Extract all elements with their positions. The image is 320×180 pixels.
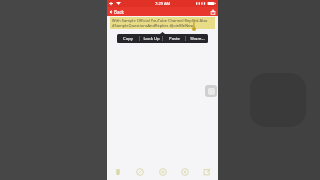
button[interactable]: Share... [186,34,208,43]
button[interactable]: Share [210,9,216,15]
staticText: Back [114,9,125,15]
other: Touch indicator [205,85,217,97]
staticText: With Sample Official YouTube Channel Rep… [112,18,208,23]
button[interactable]: Copy [117,34,139,43]
button[interactable]: Delete [111,165,125,179]
button[interactable]: Move [156,165,170,179]
button[interactable]: Look Up [140,34,162,43]
staticText: Share... [190,36,205,42]
staticText: Copy [123,36,133,42]
button[interactable]: Reply [178,165,192,179]
button[interactable]: Paste [163,34,185,43]
staticText: Look Up [143,36,160,42]
staticText: 7:29 AM [155,1,171,6]
staticText: #SampleQuestionsAndReplies #JoinMeNow [112,23,194,28]
button[interactable]: Flag [133,165,147,179]
staticText: Paste [169,36,180,42]
button[interactable]: Back [109,9,125,15]
button[interactable]: Compose [200,165,214,179]
